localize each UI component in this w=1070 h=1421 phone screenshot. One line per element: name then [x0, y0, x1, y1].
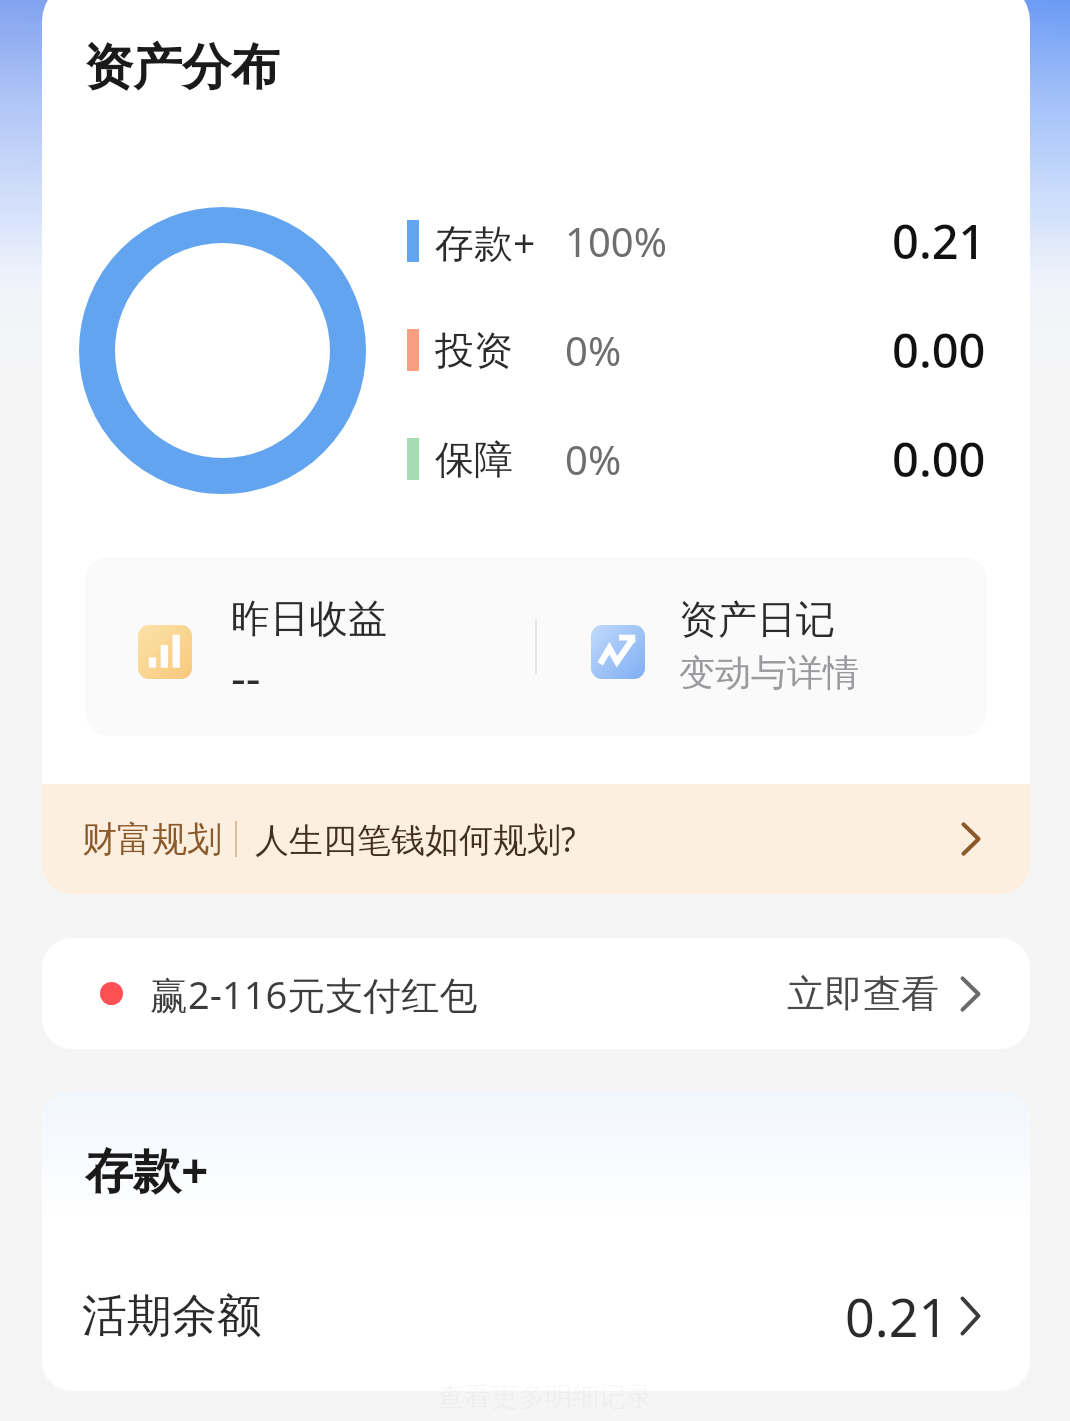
staticText: 0.00 [892, 318, 986, 382]
staticText: 资产分布 [84, 37, 280, 99]
button[interactable]: 昨日收益 [85, 590, 535, 704]
staticText: 0% [565, 432, 622, 486]
staticText: 赢2-116元支付红包 [150, 968, 478, 1020]
staticText: 存款+ [435, 215, 536, 268]
staticText: 100% [565, 214, 667, 268]
button[interactable]: 资产日记 [537, 597, 987, 697]
staticText: -- [231, 645, 261, 708]
staticText: 查看更多明细记录 [437, 1380, 653, 1414]
staticText: 变动与详情 [679, 650, 859, 695]
staticText: 保障 [435, 435, 513, 484]
staticText: 0.21 [892, 209, 986, 273]
button[interactable]: 赢2-116元支付红包 [42, 938, 1030, 1049]
staticText: 昨日收益 [231, 594, 387, 643]
staticText: 投资 [435, 326, 513, 375]
button[interactable]: 活期余额 [42, 1266, 1030, 1366]
staticText: 存款+ [85, 1137, 209, 1203]
staticText: 0.21 [845, 1281, 949, 1352]
staticText: 财富规划 [82, 817, 222, 861]
button[interactable]: 财富规划 [42, 784, 1030, 894]
staticText: 0% [565, 323, 622, 377]
staticText: 人生四笔钱如何规划? [255, 816, 576, 862]
staticText: 0.00 [892, 427, 986, 491]
staticText: 活期余额 [82, 1288, 262, 1345]
staticText: 资产日记 [679, 595, 835, 644]
staticText: 立即查看 [787, 970, 939, 1018]
